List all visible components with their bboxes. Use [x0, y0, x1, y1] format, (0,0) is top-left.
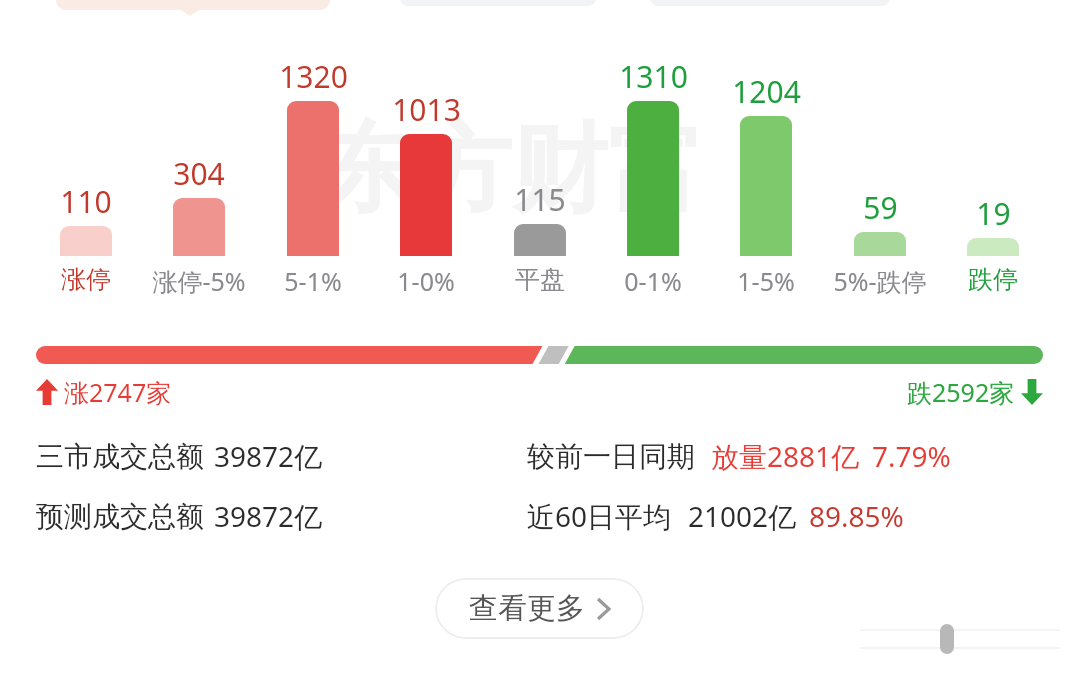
staticText: 近60日平均 [527, 497, 672, 535]
staticText: 三市成交总额 [36, 439, 204, 474]
staticText: 89.85% [809, 497, 904, 535]
staticText: 1013 [392, 89, 461, 130]
staticText: 1204 [732, 71, 801, 112]
staticText: 19 [976, 193, 1011, 234]
staticText: 涨停 [61, 264, 111, 295]
staticText: 预测成交总额 [36, 499, 204, 534]
staticText: 39872亿 [214, 497, 323, 535]
staticText: 较前一日同期 [527, 439, 695, 474]
staticText: 东方财富 [320, 110, 704, 231]
staticText: 115 [514, 179, 566, 220]
staticText: 涨停-5% [152, 264, 246, 298]
staticText: 1310 [619, 56, 688, 97]
staticText: 39872亿 [214, 437, 323, 475]
staticText: 跌2592家 [907, 375, 1015, 409]
staticText: 0-1% [624, 264, 682, 298]
staticText: 1320 [279, 56, 348, 97]
button[interactable]: 查看更多 [435, 578, 644, 639]
staticText: 59 [863, 187, 898, 228]
other: 下跌 [1021, 379, 1043, 405]
staticText: 平盘 [515, 264, 565, 295]
staticText: 21002亿 [688, 497, 797, 535]
staticText: 110 [60, 181, 112, 222]
staticText: 跌停 [968, 264, 1018, 295]
staticText: 1-0% [397, 264, 455, 298]
staticText: 5%-跌停 [833, 264, 927, 298]
staticText: 5-1% [284, 264, 342, 298]
staticText: 7.79% [872, 437, 951, 475]
staticText: 放量2881亿 [711, 437, 860, 475]
staticText: 涨2747家 [64, 375, 172, 409]
other: 上涨 [36, 379, 58, 405]
staticText: 304 [173, 153, 225, 194]
staticText: 查看更多 [469, 590, 585, 627]
staticText: 1-5% [737, 264, 795, 298]
